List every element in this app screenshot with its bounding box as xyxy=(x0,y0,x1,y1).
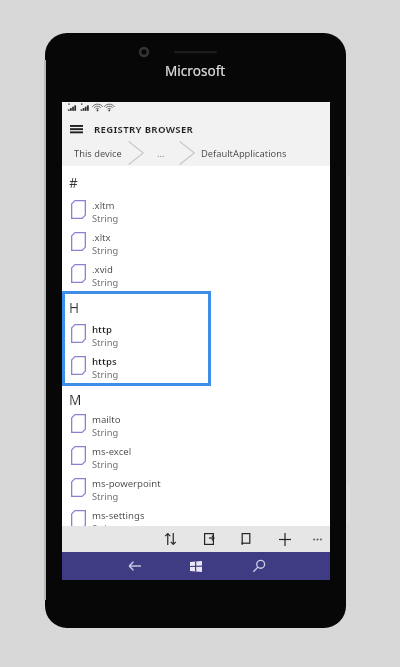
staticText: String xyxy=(92,368,119,381)
button[interactable]: ... xyxy=(155,146,167,161)
staticText: .xvid xyxy=(92,263,113,276)
staticText: http xyxy=(92,323,112,336)
button[interactable]: .xvid xyxy=(62,260,330,292)
staticText: ms-settings xyxy=(92,509,145,522)
button[interactable]: Add xyxy=(267,526,303,552)
staticText: H xyxy=(69,298,80,317)
button[interactable]: mailto xyxy=(62,410,330,442)
staticText: DefaultApplications xyxy=(201,147,287,160)
staticText: This device xyxy=(74,147,122,160)
staticText: REGISTRY BROWSER xyxy=(94,123,194,136)
staticText: .xltm xyxy=(92,199,115,212)
button[interactable]: This device xyxy=(72,146,124,161)
staticText: .xltx xyxy=(92,231,111,244)
button[interactable]: Back xyxy=(112,552,156,580)
button[interactable]: ms-excel xyxy=(62,442,330,474)
staticText: mailto xyxy=(92,413,121,426)
staticText: M xyxy=(69,390,82,409)
button[interactable]: Copy xyxy=(228,526,264,552)
staticText: Microsoft xyxy=(165,61,226,80)
staticText: String xyxy=(92,212,119,225)
button[interactable]: Start xyxy=(174,552,218,580)
button[interactable]: http xyxy=(62,320,330,352)
button[interactable]: ms-settings xyxy=(62,506,330,538)
button[interactable]: Search xyxy=(237,552,281,580)
staticText: String xyxy=(92,336,119,349)
button[interactable]: Menu xyxy=(63,118,89,140)
staticText: String xyxy=(92,490,119,503)
staticText: # xyxy=(69,173,78,192)
staticText: https xyxy=(92,355,117,368)
button[interactable]: .xltx xyxy=(62,228,330,260)
button[interactable]: Export xyxy=(191,526,227,552)
staticText: String xyxy=(92,276,119,289)
button[interactable]: .xltm xyxy=(62,196,330,228)
staticText: String xyxy=(92,244,119,257)
button[interactable]: More options xyxy=(299,526,335,552)
button[interactable]: https xyxy=(62,352,330,384)
staticText: ... xyxy=(157,147,165,160)
staticText: String xyxy=(92,426,119,439)
button[interactable]: ms-powerpoint xyxy=(62,474,330,506)
button[interactable]: DefaultApplications xyxy=(199,146,289,161)
staticText: String xyxy=(92,458,119,471)
staticText: ms-powerpoint xyxy=(92,477,161,490)
button[interactable]: Sort xyxy=(152,526,188,552)
staticText: ms-excel xyxy=(92,445,132,458)
staticText: String xyxy=(92,522,119,535)
